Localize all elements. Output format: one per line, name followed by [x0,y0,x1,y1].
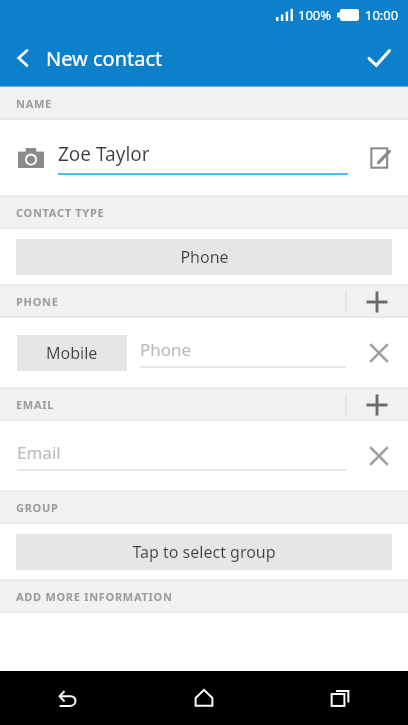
other: Back [0,35,46,81]
staticText: EMAIL [16,397,55,412]
staticText: PHONE [16,294,59,309]
staticText: GROUP [16,500,59,515]
button[interactable]: Home [136,671,272,725]
staticText: New contact [46,45,163,72]
button[interactable]: Add email address [346,388,408,421]
button[interactable]: Save contact [350,29,408,87]
button[interactable]: Add photo [0,120,408,196]
staticText: ADD MORE INFORMATION [16,589,173,604]
button[interactable]: Recent apps [272,671,408,725]
button[interactable]: Back [0,671,136,725]
button[interactable]: Remove email [350,427,408,485]
staticText: Tap to select group [132,541,276,563]
button[interactable]: Add phone number [346,285,408,318]
button[interactable]: Edit name [354,131,408,185]
staticText: Email [17,441,61,464]
button[interactable]: Back [0,35,179,81]
staticText: Zoe Taylor [58,141,150,167]
staticText: 10:00 [365,6,399,24]
button[interactable]: Phone [16,239,392,275]
staticText: Phone [180,246,229,268]
staticText: NAME [16,96,52,111]
button[interactable]: Tap to select group [16,534,392,570]
staticText: Phone [140,338,192,361]
staticText: Mobile [46,342,98,364]
staticText: 100% [298,6,332,24]
button[interactable]: Mobile [17,335,127,371]
other: Add photo [18,148,44,168]
button[interactable]: Remove phone [350,324,408,382]
staticText: CONTACT TYPE [16,205,105,220]
